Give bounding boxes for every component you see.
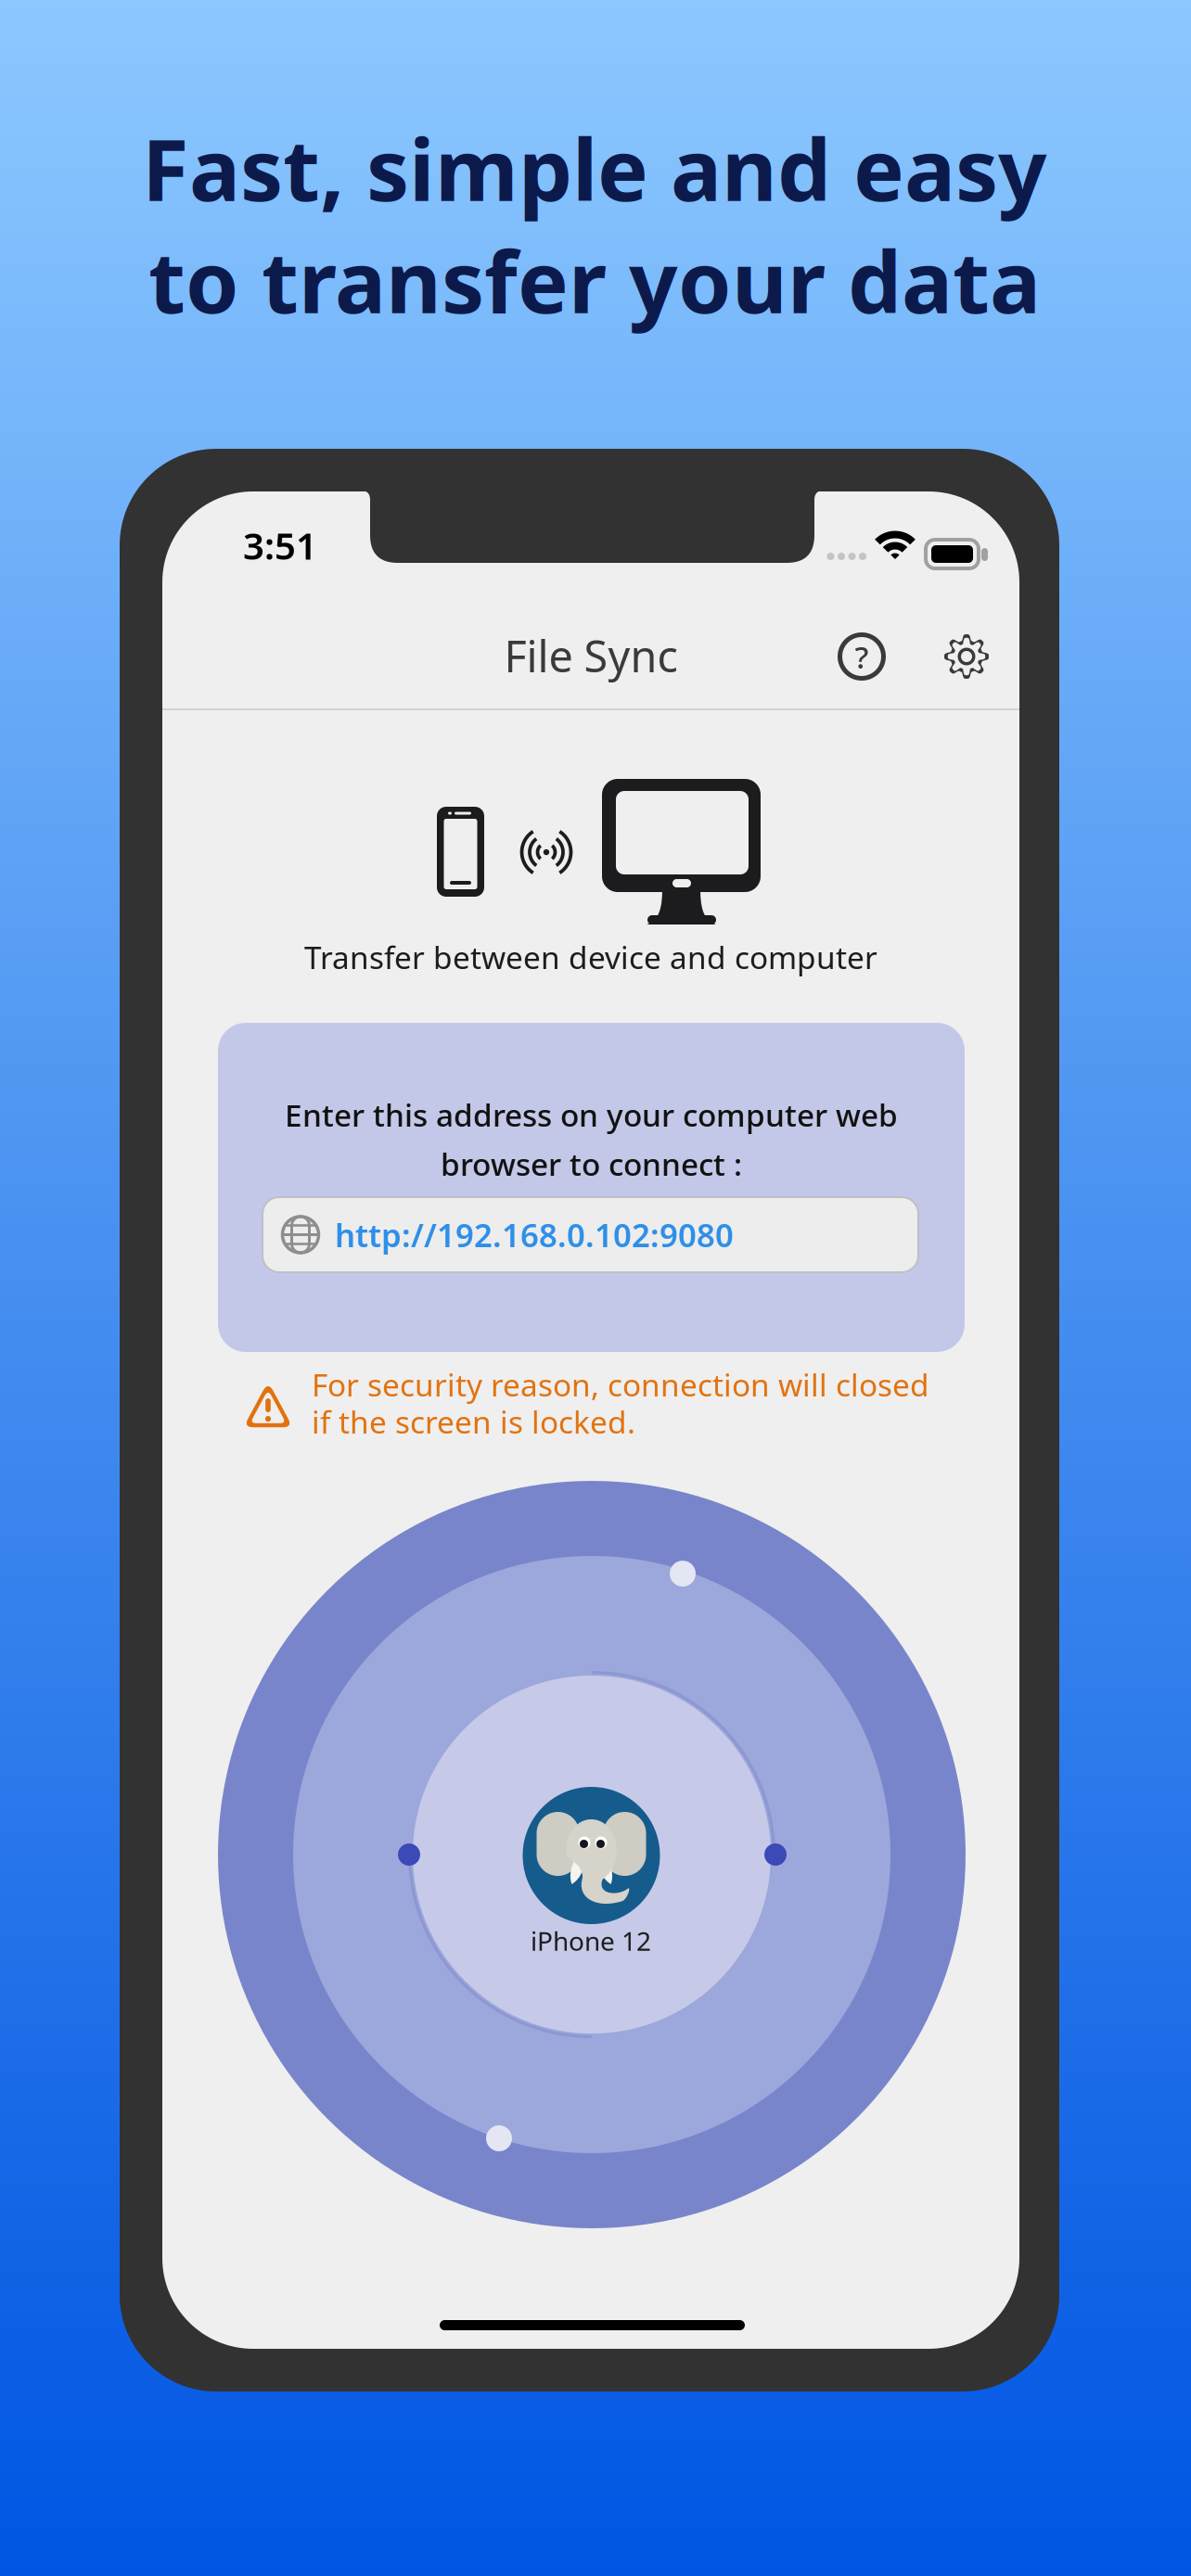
staticText: iPhone 12 bbox=[531, 1924, 651, 1958]
button[interactable]: Settings bbox=[925, 615, 1008, 698]
staticText: Transfer between device and computer bbox=[304, 936, 877, 978]
staticText: File Sync bbox=[504, 627, 678, 684]
staticText: 3:51 bbox=[243, 521, 317, 570]
staticText: if the screen is locked. bbox=[312, 1401, 635, 1442]
button[interactable]: http://192.168.0.102:9080 bbox=[263, 1197, 918, 1272]
staticText: For security reason, connection will clo… bbox=[312, 1364, 929, 1405]
button[interactable]: Help bbox=[820, 615, 903, 698]
staticText: http://192.168.0.102:9080 bbox=[335, 1213, 734, 1256]
staticText: Enter this address on your computer web bbox=[285, 1094, 898, 1135]
staticText: Fast, simple and easy bbox=[142, 111, 1047, 224]
staticText: to transfer your data bbox=[148, 223, 1041, 337]
staticText: ? bbox=[855, 636, 869, 677]
staticText: browser to connect : bbox=[441, 1143, 742, 1184]
